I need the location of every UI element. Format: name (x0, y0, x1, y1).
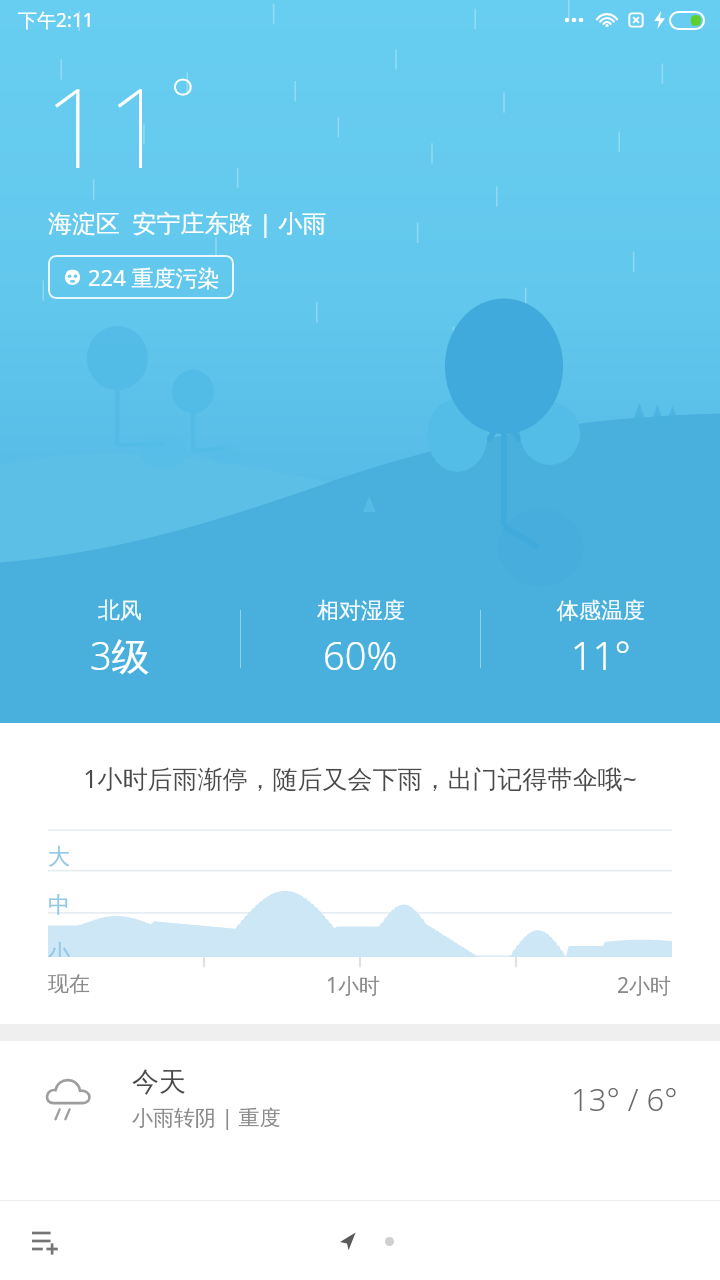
staticText: 中 (48, 891, 70, 919)
staticText: 11° (571, 629, 631, 681)
staticText: 现在 (48, 971, 90, 997)
other: Light rain (42, 1073, 94, 1125)
staticText: 11 (44, 50, 170, 200)
staticText: 13° / 6° (571, 1078, 678, 1120)
button[interactable]: City list (12, 1209, 76, 1273)
staticText: 海淀区 安宁庄东路 | 小雨 (48, 206, 327, 239)
button[interactable]: 大 (48, 829, 672, 957)
staticText: 今天 (132, 1065, 186, 1099)
staticText: ° (170, 58, 196, 140)
staticText: 224 重度污染 (88, 262, 220, 292)
button[interactable]: Current location (327, 1220, 369, 1262)
staticText: 3级 (90, 629, 150, 681)
button[interactable]: 224 重度污染 (48, 255, 234, 299)
button[interactable]: 北风 (0, 597, 240, 681)
staticText: 相对湿度 (317, 597, 405, 625)
staticText: 60% (323, 629, 398, 681)
staticText: 小雨转阴 | 重度 (132, 1103, 281, 1132)
button[interactable]: 相对湿度 (241, 597, 480, 681)
staticText: 小 (48, 939, 70, 957)
button[interactable]: 体感温度 (481, 597, 720, 681)
staticText: 1小时 (326, 971, 381, 1000)
staticText: 大 (48, 843, 70, 871)
staticText: 北风 (98, 597, 142, 625)
button[interactable]: Light rain (0, 1041, 720, 1156)
staticText: 下午2:11 (18, 7, 94, 33)
staticText: 2小时 (617, 971, 672, 1000)
staticText: 体感温度 (557, 597, 645, 625)
staticText: 1小时后雨渐停，随后又会下雨，出门记得带伞哦~ (12, 761, 708, 795)
